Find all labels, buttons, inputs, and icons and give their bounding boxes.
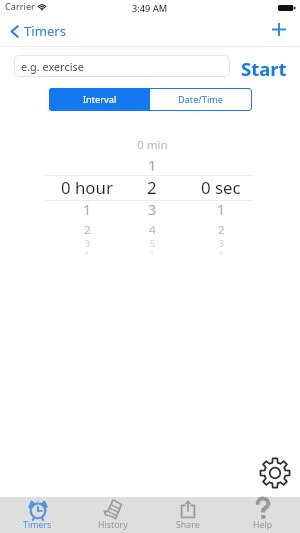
button[interactable]: 0 sec bbox=[181, 130, 261, 260]
staticText: 0 hour bbox=[61, 176, 113, 199]
staticText: 4 bbox=[85, 249, 89, 257]
staticText: 5 bbox=[150, 238, 155, 250]
staticText: 6 bbox=[150, 249, 154, 257]
staticText: 1 bbox=[83, 200, 92, 219]
staticText: 1 bbox=[148, 155, 157, 175]
staticText: 3 bbox=[148, 200, 157, 219]
button[interactable]: Date/Time bbox=[150, 88, 252, 111]
button[interactable]: Help bbox=[225, 497, 300, 533]
staticText: 3 bbox=[219, 238, 224, 250]
staticText: 3 bbox=[85, 238, 90, 250]
staticText: 2 bbox=[218, 222, 225, 238]
button[interactable]: 0 min bbox=[112, 130, 192, 260]
button[interactable]: Settings bbox=[259, 457, 291, 489]
button[interactable]: e.g. exercise bbox=[14, 55, 230, 77]
staticText: 4 bbox=[219, 249, 223, 257]
staticText: e.g. exercise bbox=[21, 59, 84, 74]
staticText: 1 bbox=[217, 200, 226, 219]
staticText: Carrier bbox=[5, 0, 35, 13]
button[interactable]: Timers bbox=[0, 16, 74, 46]
staticText: 4 bbox=[149, 222, 156, 238]
staticText: Help bbox=[253, 519, 273, 531]
staticText: 2 bbox=[147, 176, 157, 199]
button[interactable]: Add timer bbox=[272, 23, 286, 36]
staticText: History bbox=[98, 519, 128, 531]
staticText: 3:49 AM bbox=[132, 2, 168, 15]
button[interactable]: Timers bbox=[0, 497, 75, 533]
staticText: 2 bbox=[84, 222, 91, 238]
staticText: 0 sec bbox=[201, 176, 241, 199]
staticText: Timers bbox=[23, 519, 52, 531]
button[interactable]: 0 hour bbox=[47, 130, 127, 260]
staticText: Date/Time bbox=[178, 93, 224, 106]
staticText: Share bbox=[176, 519, 200, 531]
staticText: Timers bbox=[24, 22, 66, 40]
button[interactable]: History bbox=[75, 497, 150, 533]
button[interactable]: Interval bbox=[49, 88, 150, 111]
button[interactable]: Start bbox=[239, 54, 289, 83]
staticText: Interval bbox=[83, 93, 117, 106]
staticText: 0 min bbox=[137, 137, 168, 153]
staticText: Start bbox=[241, 56, 287, 81]
button[interactable]: Share bbox=[150, 497, 225, 533]
